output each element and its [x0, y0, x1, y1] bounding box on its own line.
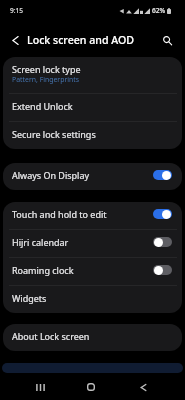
- button[interactable]: Screen lock type: [3, 57, 182, 93]
- staticText: Lock screen and AOD: [27, 33, 134, 47]
- button[interactable]: On: [153, 209, 172, 219]
- button[interactable]: Extend Unlock: [3, 94, 182, 121]
- button[interactable]: Search: [159, 32, 175, 48]
- button[interactable]: About Lock screen: [3, 324, 182, 351]
- button[interactable]: Hijri calendar: [3, 230, 182, 257]
- staticText: Roaming clock: [12, 264, 153, 276]
- button[interactable]: Touch and hold to edit: [3, 202, 182, 229]
- button[interactable]: Recent apps: [22, 374, 58, 400]
- button[interactable]: Always On Display: [3, 163, 182, 190]
- staticText: 62%: [152, 6, 166, 15]
- staticText: Extend Unlock: [12, 100, 73, 112]
- button[interactable]: Back: [6, 31, 24, 49]
- button[interactable]: Off: [153, 265, 172, 275]
- staticText: Always On Display: [12, 169, 153, 181]
- staticText: 9:15: [10, 6, 24, 15]
- button[interactable]: Back: [125, 374, 161, 400]
- button[interactable]: Home: [73, 374, 109, 400]
- staticText: Screen lock type: [12, 63, 81, 75]
- staticText: Widgets: [12, 292, 47, 304]
- button[interactable]: On: [153, 170, 172, 180]
- staticText: Secure lock settings: [12, 128, 96, 140]
- staticText: Pattern, Fingerprints: [12, 75, 80, 84]
- staticText: About Lock screen: [12, 330, 90, 342]
- button[interactable]: Roaming clock: [3, 258, 182, 285]
- button[interactable]: Widgets: [3, 286, 182, 313]
- staticText: Hijri calendar: [12, 236, 153, 248]
- button[interactable]: Off: [153, 237, 172, 247]
- button[interactable]: Secure lock settings: [3, 122, 182, 149]
- staticText: Touch and hold to edit: [12, 208, 153, 220]
